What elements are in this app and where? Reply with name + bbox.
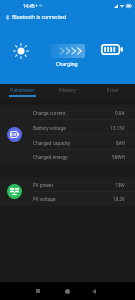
staticText: Charge current	[33, 110, 66, 116]
button[interactable]: Back	[83, 282, 104, 300]
staticText: History	[59, 87, 76, 94]
button[interactable]: Parameter	[0, 84, 45, 99]
staticText: Parameter	[10, 87, 35, 94]
button[interactable]: PV voltage	[0, 192, 135, 206]
button[interactable]: Error	[90, 84, 135, 99]
button[interactable]: Battery voltage	[0, 120, 135, 135]
staticText: 14:45	[23, 3, 35, 9]
staticText: 18.2V	[113, 196, 125, 202]
staticText: 13.13V	[110, 125, 125, 131]
button[interactable]: Charged capacity	[0, 135, 135, 150]
staticText: Charged capacity	[33, 140, 71, 146]
staticText: 56WH	[112, 154, 125, 160]
staticText: 13W	[115, 182, 125, 188]
staticText: 0.9A	[115, 110, 125, 116]
staticText: PV power	[33, 182, 54, 188]
staticText: Battery voltage	[33, 125, 66, 131]
staticText: Error	[107, 87, 119, 94]
staticText: Bluetooth is connected	[12, 14, 67, 21]
button[interactable]: Home	[57, 282, 78, 300]
staticText: 8AH	[116, 140, 125, 146]
button[interactable]: History	[45, 84, 90, 99]
staticText: Charged energy	[33, 154, 68, 160]
button[interactable]: Recent apps	[27, 282, 48, 300]
button[interactable]: PV power	[0, 177, 135, 192]
button[interactable]: Charge current	[0, 105, 135, 120]
button[interactable]: Charged energy	[0, 150, 135, 163]
staticText: Charging	[56, 61, 78, 68]
staticText: PV voltage	[33, 196, 56, 202]
